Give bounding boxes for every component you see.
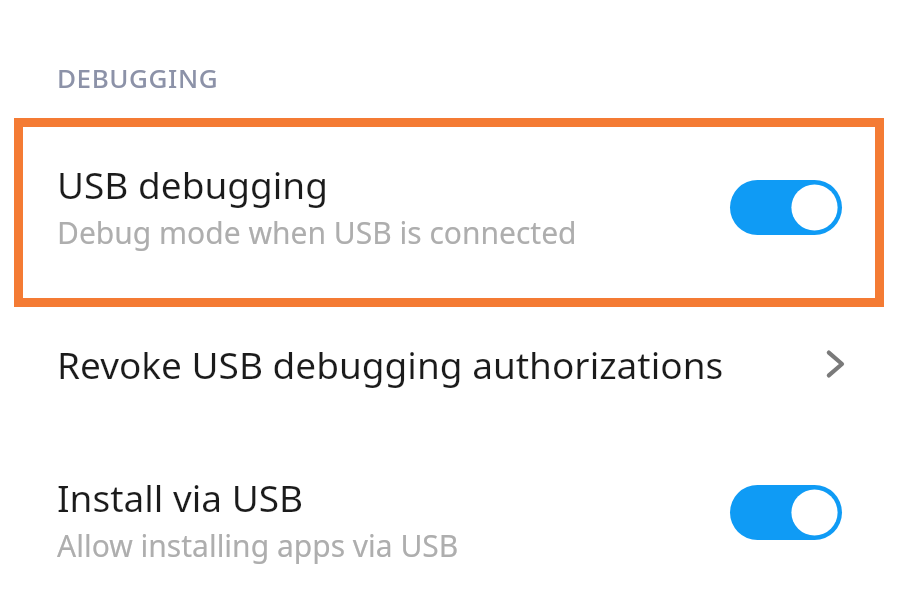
button[interactable]: USB debugging: [18, 122, 880, 303]
staticText: USB debugging: [57, 159, 328, 209]
button[interactable]: USB debugging toggle, on: [730, 180, 842, 235]
button[interactable]: Install via USB toggle, on: [730, 485, 842, 540]
staticText: Revoke USB debugging authorizations: [57, 339, 724, 389]
staticText: DEBUGGING: [57, 60, 219, 95]
button[interactable]: Open Revoke USB debugging authorizations: [813, 342, 857, 386]
staticText: Install via USB: [57, 472, 304, 522]
button[interactable]: Revoke USB debugging authorizations: [0, 320, 901, 408]
button[interactable]: Install via USB: [0, 452, 901, 582]
staticText: Debug mode when USB is connected: [57, 212, 577, 253]
staticText: Allow installing apps via USB: [57, 525, 459, 566]
